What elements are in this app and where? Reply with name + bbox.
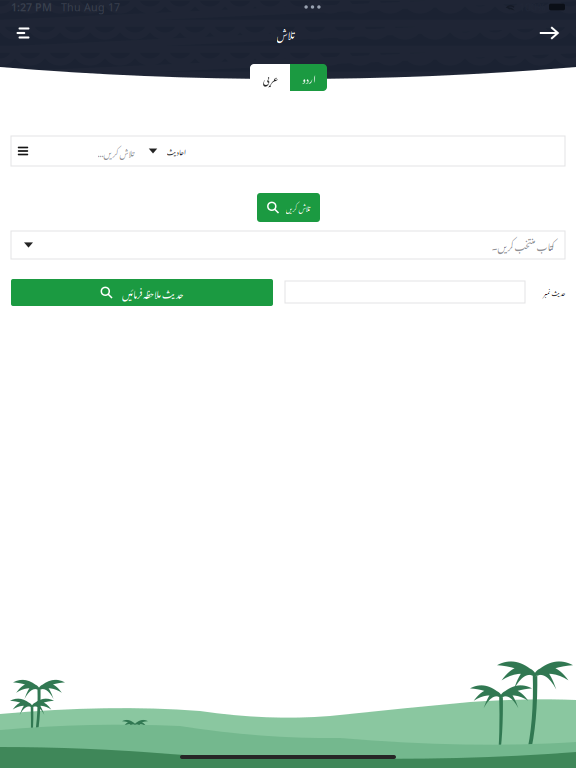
staticText: اردو <box>301 66 315 89</box>
staticText: حدیث نمبر <box>543 284 565 299</box>
button[interactable]: تلاش کریں... <box>64 137 134 167</box>
button[interactable]: عربی <box>250 64 290 91</box>
button[interactable]: تلاش کریں <box>257 193 320 222</box>
staticText: تلاش کریں... <box>97 142 134 162</box>
staticText: حدیث ملاحظہ فرمائیں <box>121 281 183 304</box>
button[interactable]: Search options <box>6 136 40 166</box>
button[interactable]: احادیث <box>149 136 185 166</box>
staticText: Thu Aug 17 <box>52 0 120 14</box>
staticText: عربی <box>262 66 277 89</box>
button[interactable]: کتاب منتخب کریں۔ <box>11 231 565 259</box>
staticText: تلاش <box>276 20 294 45</box>
staticText: 1:27 PM <box>11 0 52 14</box>
button[interactable]: Menu <box>7 16 41 50</box>
button[interactable]: Next <box>529 16 569 50</box>
staticText: تلاش کریں <box>285 199 310 216</box>
button[interactable]: حدیث ملاحظہ فرمائیں <box>11 279 273 306</box>
staticText: کتاب منتخب کریں۔ <box>491 233 554 257</box>
staticText: احادیث <box>166 143 185 159</box>
button[interactable]: اردو <box>290 64 327 91</box>
button[interactable]: Hadith number <box>285 281 525 303</box>
